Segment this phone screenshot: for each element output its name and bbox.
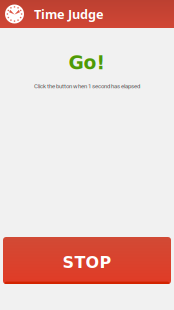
button[interactable]: STOP <box>3 237 171 284</box>
staticText: Time Judge <box>34 5 104 23</box>
staticText: Click the button when 1 second has elaps… <box>34 83 140 90</box>
staticText: Go! <box>68 52 105 74</box>
staticText: STOP <box>62 253 111 272</box>
